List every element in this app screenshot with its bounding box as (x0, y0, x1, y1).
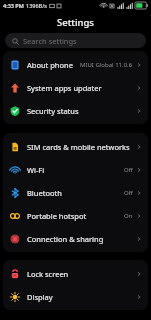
other: Lock screen (10, 269, 20, 279)
button[interactable]: Bluetooth (3, 181, 148, 204)
other: System apps updater (10, 83, 20, 93)
other: About phone (10, 60, 20, 70)
staticText: MIUI Global 11.0.6 (80, 61, 133, 69)
staticText: Search settings (23, 36, 77, 46)
staticText: Display (27, 292, 53, 302)
button[interactable]: Security status (3, 99, 148, 122)
other: Connection & sharing (10, 234, 20, 244)
button[interactable]: About phone (3, 53, 148, 76)
button[interactable]: SIM cards (3, 135, 148, 158)
staticText: 4:33 PM (3, 2, 24, 9)
staticText: Off (124, 166, 133, 174)
other: Display (10, 292, 20, 302)
button[interactable]: Portable hotspot (3, 204, 148, 227)
staticText: 1396B/s (26, 2, 47, 9)
other: Security status (10, 106, 20, 116)
staticText: System apps updater (27, 83, 102, 93)
staticText: Lock screen (27, 269, 69, 279)
other: SIM cards (10, 142, 20, 152)
other: Wi-Fi (10, 165, 20, 175)
staticText: Bluetooth (27, 188, 62, 198)
staticText: Off (124, 189, 133, 197)
button[interactable]: Connection & sharing (3, 227, 148, 250)
staticText: Portable hotspot (27, 211, 87, 221)
other: Bluetooth (10, 188, 20, 198)
staticText: Connection & sharing (27, 234, 104, 244)
staticText: Settings (57, 16, 94, 29)
button[interactable]: Search settings (5, 33, 146, 48)
other: Portable hotspot (10, 211, 20, 221)
staticText: Security status (27, 106, 79, 116)
staticText: Wi-Fi (27, 165, 45, 175)
staticText: About phone (27, 60, 73, 70)
staticText: SIM cards & mobile networks (27, 142, 130, 152)
button[interactable]: Wi-Fi (3, 158, 148, 181)
button[interactable]: Lock screen (3, 262, 148, 285)
staticText: On (124, 212, 133, 220)
button[interactable]: System apps updater (3, 76, 148, 99)
button[interactable]: Display (3, 285, 148, 308)
